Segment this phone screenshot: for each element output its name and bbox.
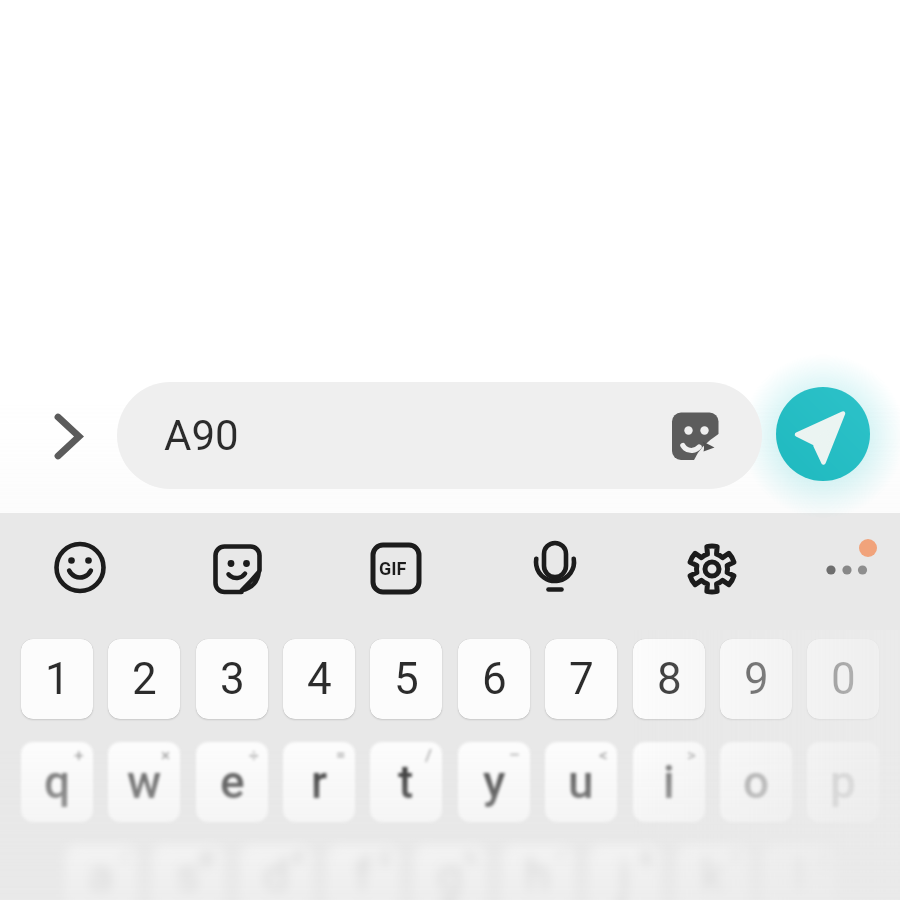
button[interactable]: w	[108, 742, 180, 822]
staticText: GIF	[379, 558, 407, 579]
button[interactable]: 4	[283, 639, 355, 719]
button[interactable]	[38, 407, 98, 467]
button[interactable]: 2	[108, 639, 180, 719]
button[interactable]	[361, 533, 431, 603]
staticText: 5	[394, 653, 419, 705]
button[interactable]: i	[633, 742, 705, 822]
staticText: >	[687, 745, 696, 765]
button[interactable]: o	[720, 742, 792, 822]
button[interactable]: t	[370, 742, 442, 822]
button[interactable]: e	[196, 742, 268, 822]
button[interactable]: q	[21, 742, 93, 822]
staticText: e	[220, 755, 245, 809]
staticText: /	[425, 745, 433, 765]
button[interactable]	[203, 533, 273, 603]
staticText: 4	[307, 653, 332, 705]
button[interactable]: r	[283, 742, 355, 822]
button[interactable]: 1	[21, 639, 93, 719]
button[interactable]	[776, 387, 870, 481]
staticText: d	[263, 849, 289, 900]
button[interactable]: 8	[633, 639, 705, 719]
staticText: –	[509, 745, 521, 765]
staticText: A90	[164, 411, 239, 460]
staticText: =	[336, 745, 346, 765]
button[interactable]: y	[458, 742, 530, 822]
staticText: t	[398, 755, 414, 809]
button[interactable]	[677, 533, 747, 603]
button[interactable]	[810, 533, 880, 603]
staticText: r	[311, 755, 328, 809]
button[interactable]: A90	[117, 382, 762, 489]
staticText: 3	[220, 653, 245, 705]
staticText: s	[176, 849, 200, 900]
staticText: h	[525, 849, 551, 900]
staticText: 8	[657, 653, 682, 705]
staticText: 1	[45, 653, 70, 705]
button[interactable]: 6	[458, 639, 530, 719]
staticText: q	[44, 755, 71, 809]
staticText: g	[437, 849, 463, 900]
button[interactable]: 9	[720, 639, 792, 719]
staticText: w	[127, 755, 162, 809]
staticText: u	[568, 755, 594, 809]
staticText: p	[830, 755, 856, 809]
staticText: y	[483, 755, 506, 809]
button[interactable]: 7	[545, 639, 617, 719]
staticText: 9	[744, 653, 769, 705]
staticText: ×	[161, 745, 171, 765]
staticText: a	[88, 849, 114, 900]
staticText: +	[74, 745, 84, 765]
button[interactable]: 0	[807, 639, 879, 719]
staticText: <	[599, 745, 608, 765]
button[interactable]	[520, 533, 590, 603]
staticText: i	[663, 755, 675, 809]
button[interactable]: p	[807, 742, 879, 822]
staticText: o	[743, 755, 770, 809]
staticText: 0	[831, 653, 856, 705]
button[interactable]: 5	[370, 639, 442, 719]
staticText: 7	[569, 653, 594, 705]
button[interactable]: 3	[196, 639, 268, 719]
staticText: ÷	[249, 745, 259, 765]
button[interactable]	[666, 408, 724, 466]
staticText: 6	[482, 653, 507, 705]
button[interactable]	[45, 533, 115, 603]
staticText: 2	[132, 653, 157, 705]
button[interactable]: u	[545, 742, 617, 822]
